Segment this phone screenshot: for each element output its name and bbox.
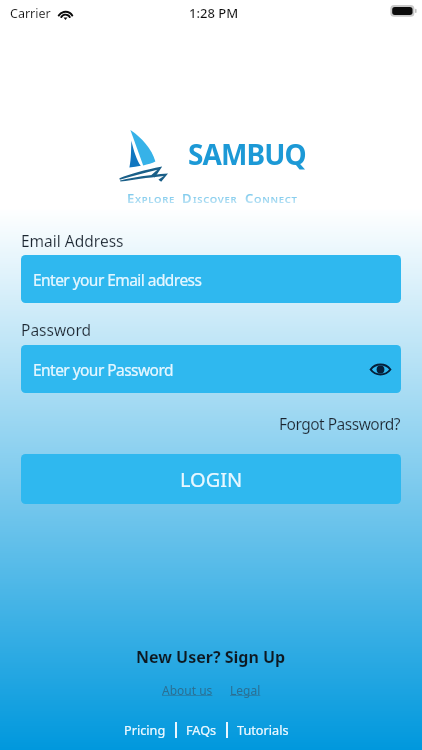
staticText: ONNECT: [254, 193, 298, 206]
button[interactable]: Enter your Password: [21, 345, 401, 393]
staticText: E: [127, 189, 135, 207]
button[interactable]: Enter your Email address: [21, 255, 401, 303]
staticText: Carrier: [10, 5, 51, 22]
button[interactable]: Legal: [230, 682, 261, 698]
other: Show password: [370, 362, 391, 377]
staticText: Enter your Email address: [33, 269, 202, 290]
staticText: D: [182, 189, 193, 207]
button[interactable]: LOGIN: [21, 454, 401, 504]
staticText: Password: [21, 319, 92, 340]
staticText: ISCOVER: [193, 193, 238, 206]
staticText: 1:28 PM: [189, 4, 239, 22]
button[interactable]: About us: [162, 682, 213, 698]
staticText: Enter your Password: [33, 359, 173, 380]
button[interactable]: New User? Sign Up: [136, 646, 286, 668]
button[interactable]: Pricing: [124, 721, 166, 738]
button[interactable]: FAQs: [186, 721, 217, 738]
button[interactable]: Forgot Password?: [279, 413, 401, 434]
staticText: Email Address: [21, 230, 124, 251]
staticText: XPLORE: [135, 193, 175, 206]
staticText: SAMBUQ: [188, 135, 306, 173]
staticText: C: [245, 189, 254, 207]
staticText: LOGIN: [180, 466, 243, 493]
button[interactable]: Tutorials: [237, 721, 289, 738]
